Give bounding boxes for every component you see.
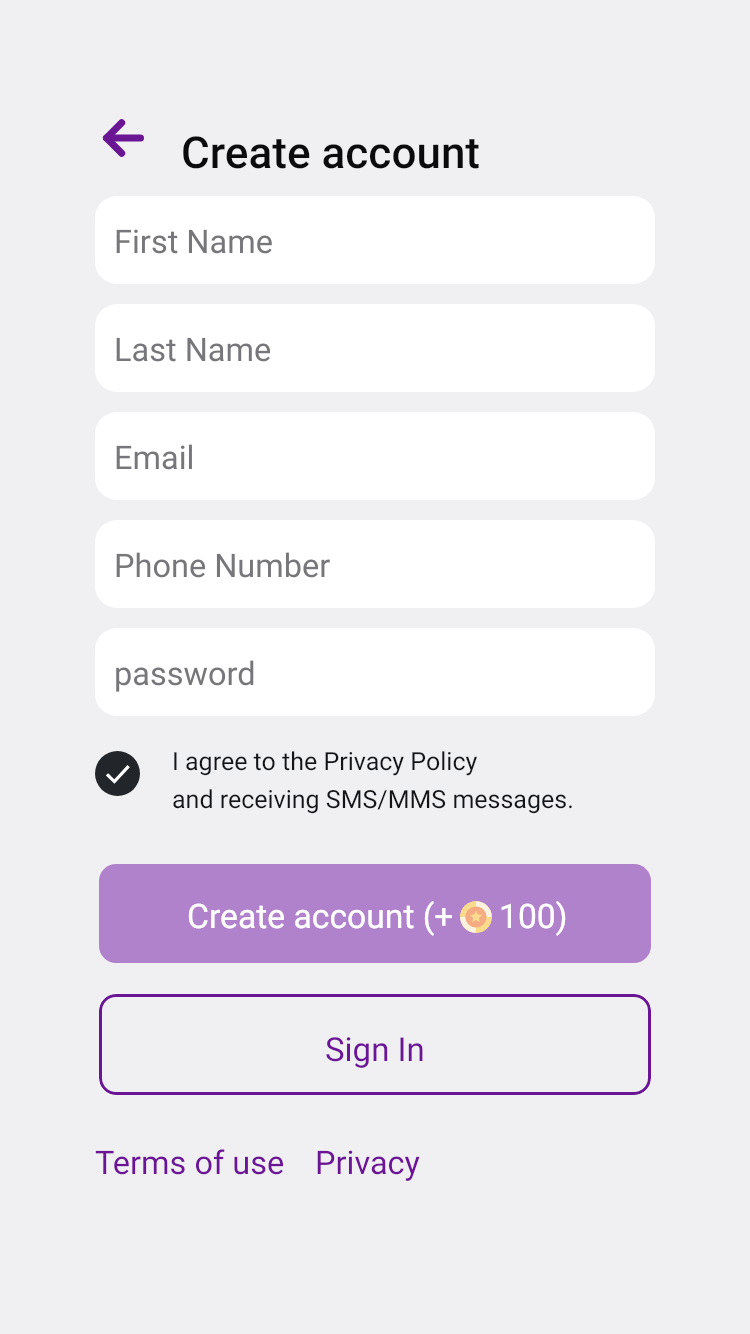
staticText: Create account (+	[187, 897, 454, 936]
button[interactable]: Email	[95, 412, 655, 500]
staticText: Terms of use	[95, 1144, 285, 1182]
button[interactable]: First Name	[95, 196, 655, 284]
staticText: password	[114, 655, 256, 693]
staticText: I agree to the Privacy Policy and receiv…	[172, 747, 574, 814]
button[interactable]: Create account (+	[99, 864, 651, 963]
button[interactable]: Phone Number	[95, 520, 655, 608]
button[interactable]: Privacy	[315, 1144, 420, 1182]
button[interactable]: password	[95, 628, 655, 716]
button[interactable]: Sign In	[99, 994, 651, 1095]
button[interactable]: Last Name	[95, 304, 655, 392]
staticText: 100)	[499, 897, 568, 936]
button[interactable]: Back	[99, 110, 155, 166]
button[interactable]: Terms of use	[95, 1144, 285, 1182]
staticText: Phone Number	[114, 547, 331, 585]
button[interactable]: I agree to the Privacy Policy and receiv…	[95, 743, 655, 810]
staticText: Sign In	[325, 1030, 425, 1069]
staticText: First Name	[114, 223, 273, 261]
staticText: Privacy	[315, 1144, 420, 1182]
staticText: Last Name	[114, 331, 272, 369]
staticText: Email	[114, 439, 195, 477]
staticText: Create account	[181, 127, 480, 179]
